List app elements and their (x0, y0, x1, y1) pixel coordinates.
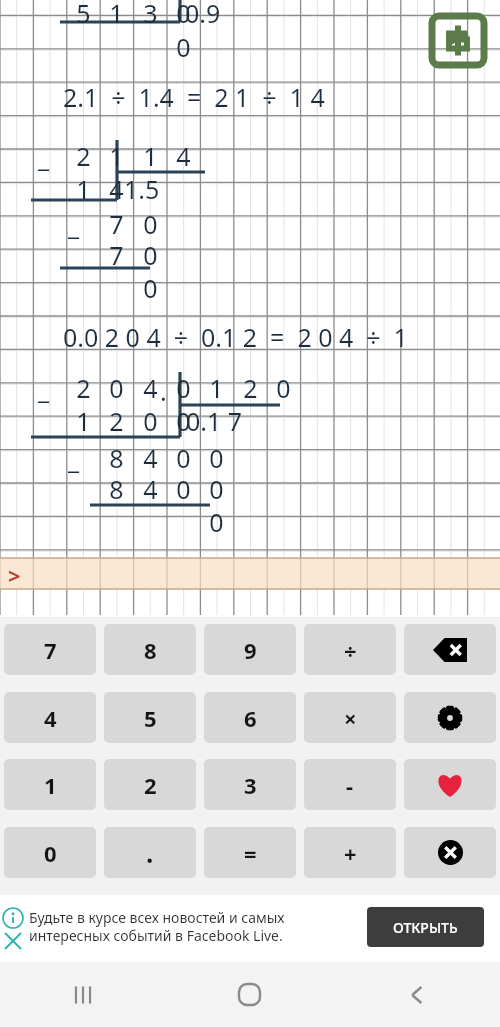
staticText: _ (38, 140, 50, 174)
staticText: 5 (67, 0, 100, 30)
staticText: 8 (144, 635, 157, 665)
button[interactable]: = (204, 827, 296, 878)
staticText: 5 (144, 703, 157, 733)
staticText: 0 (200, 472, 233, 506)
staticText: - (346, 770, 354, 800)
staticText: 0 (200, 441, 233, 475)
staticText: 4 (134, 472, 167, 506)
staticText: 3 (244, 770, 257, 800)
staticText: 6 (244, 703, 257, 733)
button[interactable]: 4 (4, 692, 96, 743)
button[interactable]: Favorite (404, 759, 496, 810)
staticText: 0.9 (185, 0, 221, 30)
staticText: 0 (44, 838, 57, 868)
button[interactable]: Clear (404, 827, 496, 878)
button[interactable]: 9 (204, 624, 296, 675)
staticText: 1 (67, 172, 100, 206)
staticText: 9 (244, 635, 257, 665)
staticText: 0 (167, 441, 200, 475)
staticText: 0.1 7 (186, 404, 243, 438)
staticText: 7 (44, 635, 57, 665)
staticText: 1 (134, 139, 167, 173)
button[interactable]: Home (166, 962, 333, 1027)
staticText: 0 (134, 271, 167, 305)
staticText: 0 (267, 371, 300, 405)
staticText: 0 (134, 238, 167, 272)
staticText: 2.1 ÷ 1.4 = 2 1 ÷ 1 4 (63, 80, 325, 114)
staticText: 7 (100, 207, 133, 241)
staticText: 4 (134, 371, 167, 405)
staticText: 0 (200, 505, 233, 539)
staticText: _ (68, 442, 80, 476)
staticText: × (344, 703, 357, 733)
staticText: 2 (144, 770, 157, 800)
staticText: 4 (167, 139, 200, 173)
staticText: 2 (234, 371, 267, 405)
staticText: 0 (167, 30, 200, 64)
staticText: 1.5 (124, 172, 160, 206)
staticText: 1 (100, 139, 133, 173)
button[interactable]: 2 (104, 759, 196, 810)
staticText: 0 (167, 472, 200, 506)
button[interactable]: ОТКРЫТЬ (367, 907, 484, 947)
staticText: 0 (167, 0, 200, 30)
staticText: 0 (134, 207, 167, 241)
button[interactable]: × (304, 692, 396, 743)
button[interactable]: + (304, 827, 396, 878)
staticText: _ (68, 208, 80, 242)
staticText: 2 (100, 404, 133, 438)
staticText: 0 (134, 404, 167, 438)
staticText: 1 (200, 371, 233, 405)
staticText: 2 (67, 139, 100, 173)
staticText: 2 (67, 371, 100, 405)
button[interactable]: Money (430, 14, 486, 67)
button[interactable]: Close ad (3, 931, 23, 951)
button[interactable]: Settings (404, 692, 496, 743)
staticText: 0.0 2 0 4 ÷ 0.1 2 = 2 0 4 ÷ 1 (63, 320, 408, 354)
staticText: . (160, 374, 167, 408)
staticText: 1 (44, 770, 57, 800)
button[interactable]: . (104, 827, 196, 878)
staticText: 0 (167, 404, 200, 438)
staticText: 0 (100, 371, 133, 405)
staticText: 4 (134, 441, 167, 475)
staticText: 7 (100, 238, 133, 272)
staticText: _ (38, 372, 50, 406)
staticText: + (344, 838, 357, 868)
button[interactable]: Ad info (2, 907, 24, 929)
button[interactable]: ÷ (304, 624, 396, 675)
button[interactable]: 6 (204, 692, 296, 743)
staticText: 0 (167, 371, 200, 405)
button[interactable]: - (304, 759, 396, 810)
staticText: = (244, 838, 257, 868)
button[interactable]: 8 (104, 624, 196, 675)
button[interactable]: Back (333, 962, 500, 1027)
staticText: 8 (100, 472, 133, 506)
button[interactable]: Backspace (404, 624, 496, 675)
staticText: 8 (100, 441, 133, 475)
button[interactable]: 1 (4, 759, 96, 810)
staticText: 4 (100, 172, 133, 206)
staticText: Будьте в курсе всех новостей и самых инт… (29, 908, 285, 945)
staticText: > (8, 560, 21, 590)
staticText: . (146, 835, 154, 870)
button[interactable]: Recents (0, 962, 166, 1027)
button[interactable]: 0 (4, 827, 96, 878)
button[interactable]: 5 (104, 692, 196, 743)
staticText: 1 (67, 404, 100, 438)
staticText: 1 (100, 0, 133, 30)
staticText: 4 (44, 703, 57, 733)
button[interactable]: 7 (4, 624, 96, 675)
staticText: ОТКРЫТЬ (393, 918, 458, 937)
button[interactable]: 3 (204, 759, 296, 810)
staticText: 3 (134, 0, 167, 30)
staticText: ÷ (344, 635, 357, 665)
